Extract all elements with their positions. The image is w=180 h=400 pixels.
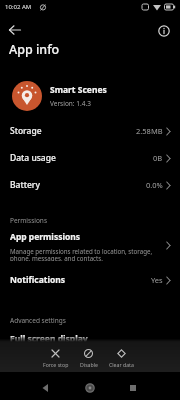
staticText: Version: 1.4.3 <box>50 99 91 108</box>
staticText: Smart Scenes <box>50 84 107 96</box>
staticText: App permissions <box>10 231 81 243</box>
staticText: 0B <box>153 153 163 163</box>
staticText: Storage <box>10 125 42 137</box>
button[interactable]: Notifications <box>0 270 180 290</box>
staticText: Data usage <box>10 152 56 164</box>
staticText: Disable <box>80 361 98 368</box>
staticText: Battery <box>10 179 40 191</box>
staticText: Yes <box>151 275 163 285</box>
button[interactable] <box>155 22 172 39</box>
button[interactable]: Disable <box>72 349 105 368</box>
staticText: 2.58MB <box>136 126 163 136</box>
button[interactable]: Data usage <box>0 147 180 169</box>
staticText: 0.0% <box>146 180 163 190</box>
staticText: 10:02 AM <box>5 3 32 11</box>
staticText: Advanced settings <box>10 316 66 325</box>
staticText: Clear data <box>109 361 134 368</box>
staticText: Notifications <box>10 274 66 286</box>
button[interactable]: Smart Scenes <box>0 78 180 114</box>
button[interactable]: Storage <box>0 120 180 142</box>
staticText: Manage permissions related to location, … <box>10 247 153 261</box>
button[interactable] <box>7 22 23 38</box>
button[interactable]: Force stop <box>39 349 72 368</box>
staticText: Full screen display <box>10 333 88 345</box>
staticText: Permissions <box>10 216 48 225</box>
staticText: App info <box>9 41 60 58</box>
button[interactable]: Battery <box>0 174 180 196</box>
button[interactable]: Clear data <box>105 349 138 368</box>
button[interactable]: App permissions <box>0 229 180 261</box>
staticText: Force stop <box>43 361 69 368</box>
